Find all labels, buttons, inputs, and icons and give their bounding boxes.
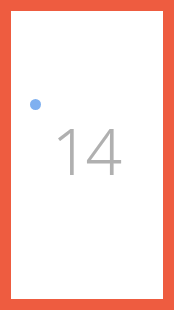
- button[interactable]: Event marker: [30, 99, 41, 110]
- button[interactable]: Day 14: [11, 11, 163, 299]
- staticText: 14: [52, 107, 120, 194]
